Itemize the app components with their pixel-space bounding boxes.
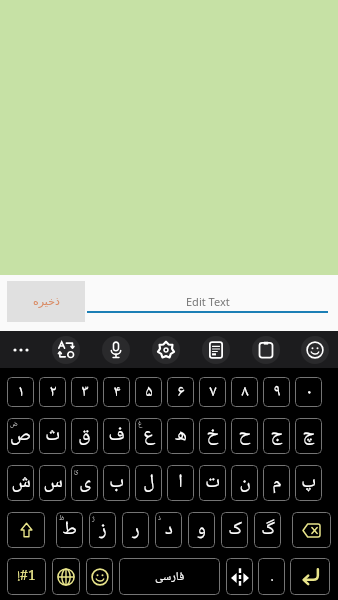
staticText: غ — [138, 419, 143, 431]
button[interactable]: Change language — [52, 558, 80, 595]
staticText: ۳ — [81, 379, 89, 406]
button[interactable]: ف — [103, 418, 130, 454]
staticText: ق — [78, 420, 91, 452]
button[interactable]: More options — [0, 331, 41, 368]
button[interactable]: . — [258, 558, 285, 595]
staticText: ۵ — [145, 379, 153, 406]
button[interactable]: ۸ — [231, 377, 258, 407]
staticText: ۸ — [241, 379, 249, 406]
button[interactable]: Enter — [290, 558, 330, 595]
button[interactable]: ر — [122, 512, 149, 548]
staticText: ن — [239, 467, 251, 499]
button[interactable]: Emoji — [86, 558, 113, 595]
button[interactable]: ۹ — [263, 377, 290, 407]
staticText: ع — [143, 420, 155, 452]
button[interactable]: Move cursor — [226, 558, 253, 595]
button[interactable]: ل — [135, 465, 162, 501]
button[interactable]: Translate — [41, 331, 91, 368]
button[interactable]: ح — [231, 418, 258, 454]
button[interactable]: ۳ — [71, 377, 98, 407]
button[interactable]: Edit Text — [87, 275, 328, 313]
staticText: . — [270, 564, 274, 590]
button[interactable]: Settings — [141, 331, 191, 368]
staticText: ۶ — [177, 379, 185, 406]
button[interactable]: د — [155, 512, 182, 548]
staticText: ز — [99, 514, 107, 546]
button[interactable]: ه — [167, 418, 194, 454]
staticText: چ — [302, 420, 315, 452]
button[interactable]: Emoji — [291, 331, 338, 368]
button[interactable]: !#1 — [7, 558, 46, 595]
button[interactable]: ۴ — [103, 377, 130, 407]
button[interactable]: ق — [71, 418, 98, 454]
button[interactable]: ش — [7, 465, 34, 501]
staticText: ۱ — [17, 379, 25, 406]
button[interactable]: ا — [167, 465, 194, 501]
button[interactable]: Shift — [7, 512, 45, 548]
button[interactable]: ۰ — [295, 377, 322, 407]
button[interactable]: ۷ — [199, 377, 226, 407]
staticText: ئ — [74, 466, 79, 478]
staticText: ه — [175, 420, 187, 452]
staticText: ذ — [158, 513, 161, 525]
button[interactable]: ذخیره — [7, 281, 85, 322]
staticText: Edit Text — [186, 294, 230, 309]
button[interactable]: ۵ — [135, 377, 162, 407]
staticText: ب — [109, 467, 124, 499]
button[interactable]: ب — [103, 465, 130, 501]
staticText: ل — [143, 467, 155, 499]
staticText: ژ — [92, 513, 95, 525]
button[interactable]: ت — [199, 465, 226, 501]
button[interactable]: Backspace — [292, 512, 331, 548]
staticText: گ — [261, 514, 275, 546]
button[interactable]: ج — [263, 418, 290, 454]
button[interactable]: ث — [39, 418, 66, 454]
staticText: ا — [178, 467, 183, 499]
button[interactable]: گ — [254, 512, 281, 548]
staticText: ش — [11, 467, 31, 499]
button[interactable]: ک — [221, 512, 248, 548]
button[interactable]: ۲ — [39, 377, 66, 407]
button[interactable]: ط — [56, 512, 83, 548]
staticText: د — [165, 514, 173, 546]
staticText: ح — [238, 420, 251, 452]
button[interactable]: ۱ — [7, 377, 34, 407]
staticText: ک — [228, 514, 242, 546]
staticText: س — [43, 467, 63, 499]
staticText: ت — [205, 467, 220, 499]
button[interactable]: چ — [295, 418, 322, 454]
staticText: ط — [62, 514, 77, 546]
button[interactable]: س — [39, 465, 66, 501]
button[interactable]: م — [263, 465, 290, 501]
staticText: ۹ — [273, 379, 281, 406]
button[interactable]: پ — [295, 465, 322, 501]
staticText: ذخیره — [33, 295, 60, 308]
staticText: ص — [10, 420, 31, 452]
button[interactable]: Stickers — [191, 331, 241, 368]
staticText: ث — [45, 420, 60, 452]
button[interactable]: ع — [135, 418, 162, 454]
staticText: ظ — [59, 513, 65, 525]
staticText: ۲ — [49, 379, 57, 406]
staticText: م — [272, 467, 282, 499]
staticText: ف — [108, 420, 125, 452]
button[interactable]: ی — [71, 465, 98, 501]
staticText: و — [197, 514, 206, 546]
staticText: ر — [132, 514, 140, 546]
button[interactable]: خ — [199, 418, 226, 454]
staticText: فارسی — [155, 567, 184, 587]
staticText: ج — [270, 420, 283, 452]
button[interactable]: فارسی — [119, 558, 220, 595]
staticText: ی — [79, 467, 91, 499]
button[interactable]: و — [188, 512, 215, 548]
button[interactable]: ن — [231, 465, 258, 501]
staticText: ۰ — [305, 379, 313, 406]
button[interactable]: ز — [89, 512, 116, 548]
button[interactable]: Voice input — [91, 331, 141, 368]
button[interactable]: ص — [7, 418, 34, 454]
staticText: !#1 — [17, 565, 36, 589]
staticText: ۷ — [209, 379, 217, 406]
button[interactable]: ۶ — [167, 377, 194, 407]
staticText: خ — [206, 420, 219, 452]
button[interactable]: Clipboard — [241, 331, 291, 368]
